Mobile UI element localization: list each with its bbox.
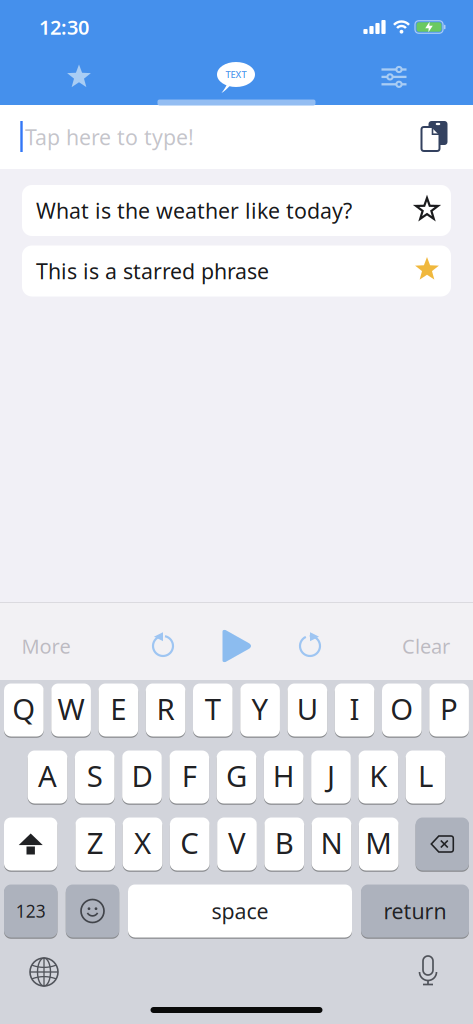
button[interactable]: N xyxy=(312,817,351,870)
button[interactable]: This is a starred phrase xyxy=(22,245,451,296)
button[interactable]: E xyxy=(98,683,138,736)
button[interactable]: Settings xyxy=(339,54,449,100)
staticText: return xyxy=(383,897,446,925)
staticText: This is a starred phrase xyxy=(36,257,269,285)
button[interactable]: C xyxy=(170,817,210,870)
staticText: C xyxy=(180,823,199,862)
staticText: More xyxy=(21,633,70,659)
button[interactable]: Next keyboard xyxy=(16,947,72,997)
staticText: A xyxy=(38,756,57,795)
button[interactable]: U xyxy=(287,683,327,736)
staticText: M xyxy=(365,823,392,862)
button[interactable]: O xyxy=(382,683,422,736)
button[interactable]: Y xyxy=(240,683,280,736)
button[interactable]: V xyxy=(217,817,257,870)
button[interactable]: Dictation xyxy=(400,946,456,996)
button[interactable]: Starred phrases xyxy=(24,54,134,100)
button[interactable]: Undo xyxy=(135,616,191,676)
button[interactable]: Q xyxy=(4,683,44,736)
staticText: N xyxy=(320,823,342,862)
button[interactable]: L xyxy=(406,750,445,803)
staticText: B xyxy=(275,823,294,862)
button[interactable]: I xyxy=(335,683,374,736)
button[interactable]: Z xyxy=(75,817,115,870)
button[interactable]: S xyxy=(75,750,115,803)
staticText: space xyxy=(211,897,268,925)
staticText: Z xyxy=(87,823,104,862)
staticText: S xyxy=(87,756,103,795)
staticText: Tap here to type! xyxy=(25,123,194,151)
button[interactable]: X xyxy=(123,817,162,870)
button[interactable]: Paste xyxy=(406,104,462,168)
button[interactable]: D xyxy=(122,750,162,803)
button[interactable]: F xyxy=(169,750,209,803)
button[interactable]: M xyxy=(359,817,399,870)
button[interactable]: G xyxy=(217,750,256,803)
button[interactable]: B xyxy=(264,817,304,870)
button[interactable]: space xyxy=(128,884,352,937)
button[interactable]: Clear xyxy=(386,616,466,676)
button[interactable]: Star phrase xyxy=(400,184,454,235)
staticText: 123 xyxy=(16,899,46,922)
button[interactable]: W xyxy=(51,683,91,736)
staticText: D xyxy=(131,756,152,795)
staticText: Q xyxy=(12,689,35,728)
button[interactable]: R xyxy=(146,683,185,736)
staticText: U xyxy=(297,689,318,728)
staticText: R xyxy=(157,689,175,728)
button[interactable]: 123 xyxy=(4,884,57,937)
staticText: I xyxy=(350,689,360,728)
button[interactable]: Play xyxy=(207,616,267,676)
button[interactable]: J xyxy=(311,750,351,803)
button[interactable]: Tap here to type! xyxy=(0,105,400,169)
button[interactable]: Shift xyxy=(4,817,57,870)
staticText: J xyxy=(327,756,335,795)
staticText: W xyxy=(58,689,85,728)
staticText: Y xyxy=(252,689,269,728)
button[interactable]: More xyxy=(6,616,86,676)
button[interactable]: return xyxy=(361,884,469,937)
button[interactable]: K xyxy=(358,750,398,803)
staticText: K xyxy=(369,756,387,795)
button[interactable]: P xyxy=(429,683,469,736)
staticText: Clear xyxy=(402,633,450,659)
staticText: F xyxy=(182,756,197,795)
staticText: P xyxy=(440,689,458,728)
button[interactable]: Text xyxy=(176,54,296,100)
staticText: E xyxy=(110,689,126,728)
button[interactable]: Delete xyxy=(416,817,469,870)
staticText: O xyxy=(390,689,413,728)
staticText: What is the weather like today? xyxy=(36,196,352,225)
button[interactable]: Redo xyxy=(282,616,338,676)
staticText: T xyxy=(205,689,221,728)
staticText: G xyxy=(226,756,247,795)
button[interactable]: What is the weather like today? xyxy=(22,185,451,236)
button[interactable]: A xyxy=(28,750,67,803)
staticText: X xyxy=(134,823,151,862)
staticText: TEXT xyxy=(225,68,246,81)
staticText: L xyxy=(418,756,433,795)
staticText: H xyxy=(273,756,295,795)
button[interactable]: Unstar phrase xyxy=(400,244,454,295)
button[interactable]: T xyxy=(193,683,233,736)
button[interactable]: H xyxy=(264,750,304,803)
button[interactable]: Emoji xyxy=(66,884,119,937)
staticText: 12:30 xyxy=(39,14,89,40)
staticText: V xyxy=(228,823,246,862)
